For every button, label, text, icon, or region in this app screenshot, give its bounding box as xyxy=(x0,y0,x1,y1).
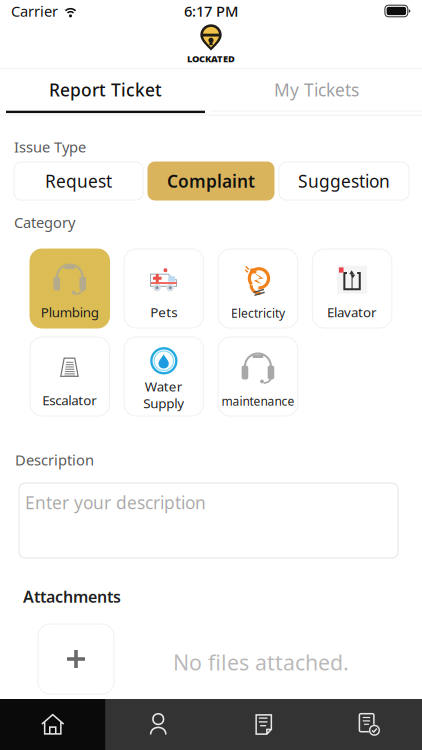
button[interactable]: Suggestion xyxy=(279,162,409,200)
button[interactable]: Request xyxy=(14,162,143,200)
staticText: Enter your description xyxy=(25,491,206,514)
staticText: No files attached. xyxy=(173,648,349,676)
button[interactable]: Elavator xyxy=(312,249,392,328)
staticText: 6:17 PM xyxy=(184,1,238,21)
staticText: My Tickets xyxy=(274,78,359,101)
staticText: Attachments xyxy=(23,586,121,607)
button[interactable]: Plumbing xyxy=(30,249,109,328)
staticText: Pets xyxy=(150,303,177,321)
button[interactable]: Profile xyxy=(105,699,211,750)
button[interactable]: My Tickets xyxy=(211,69,422,115)
staticText: Carrier xyxy=(11,1,58,21)
button[interactable]: Electricity xyxy=(218,249,298,328)
staticText: LOCKATED xyxy=(187,52,235,65)
staticText: Suggestion xyxy=(298,169,390,192)
button[interactable]: Pets xyxy=(124,249,204,328)
button[interactable]: maintenance xyxy=(218,337,298,416)
staticText: Electricity xyxy=(231,305,285,321)
button[interactable]: Complaint xyxy=(148,162,274,200)
staticText: Request xyxy=(45,169,112,192)
button[interactable]: Add attachment xyxy=(38,624,114,694)
button[interactable]: Home xyxy=(0,699,105,750)
staticText: Elavator xyxy=(327,303,377,321)
staticText: Category xyxy=(14,212,75,232)
button[interactable]: Escalator xyxy=(30,337,109,416)
staticText: Plumbing xyxy=(41,303,99,321)
button[interactable]: Report Ticket xyxy=(0,69,211,115)
staticText: Supply xyxy=(143,394,184,412)
button[interactable]: Tickets xyxy=(211,699,316,750)
staticText: Water xyxy=(145,378,183,395)
staticText: Complaint xyxy=(167,169,255,192)
staticText: maintenance xyxy=(221,393,294,409)
staticText: Issue Type xyxy=(14,137,86,156)
button[interactable]: Water xyxy=(124,337,204,416)
staticText: Escalator xyxy=(42,391,97,409)
staticText: Report Ticket xyxy=(49,78,162,101)
staticText: Description xyxy=(15,450,94,469)
button[interactable]: Approvals xyxy=(316,699,422,750)
